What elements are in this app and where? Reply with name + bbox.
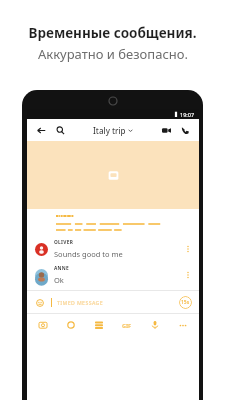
button[interactable]: 15s [179, 296, 192, 309]
button[interactable] [27, 141, 199, 209]
button[interactable]: Search [52, 122, 68, 138]
staticText: Italy trip [93, 125, 126, 136]
button[interactable]: Italy trip [68, 125, 158, 136]
button[interactable]: Back [33, 122, 49, 138]
staticText: ANNE [54, 265, 70, 272]
button[interactable]: ANNE [27, 262, 199, 288]
button[interactable]: Video call [158, 122, 174, 138]
staticText: 15s [181, 299, 190, 306]
staticText: Аккуратно и безопасно. [38, 45, 188, 63]
button[interactable]: OLIVER [27, 236, 199, 262]
button[interactable]: Emoji [27, 291, 199, 313]
button[interactable]: More [175, 317, 191, 333]
staticText: TIMED MESSAGE [57, 299, 179, 306]
staticText: GIF [122, 322, 132, 329]
staticText: OLIVER [54, 239, 74, 246]
button[interactable]: Call [177, 122, 193, 138]
staticText: 19:07 [180, 111, 195, 118]
button[interactable]: GIF [119, 317, 135, 333]
staticText: Ok [54, 275, 64, 285]
staticText: Sounds good to me [54, 249, 123, 259]
button[interactable]: Gallery [63, 317, 79, 333]
button[interactable]: Camera [35, 317, 51, 333]
button[interactable]: More options [183, 270, 193, 280]
button[interactable]: Stickers [91, 317, 107, 333]
button[interactable]: Voice message [147, 317, 163, 333]
button[interactable]: More options [183, 244, 193, 254]
staticText: Временные сообщения. [28, 24, 197, 42]
button[interactable]: Emoji [34, 297, 45, 308]
